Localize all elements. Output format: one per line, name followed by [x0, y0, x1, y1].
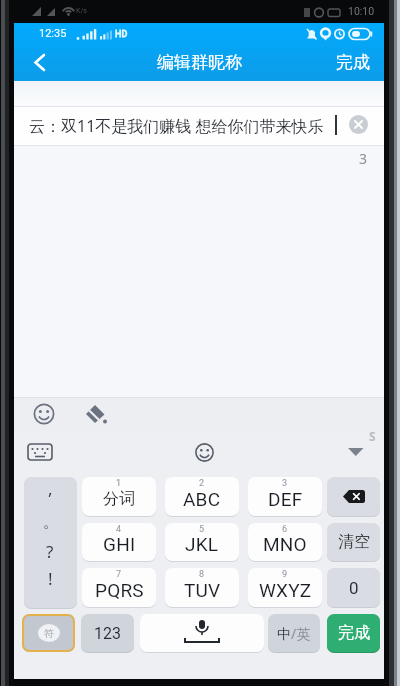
button[interactable] — [14, 107, 384, 145]
staticText: 9 — [282, 569, 288, 580]
staticText: 云：双11不是我们赚钱 想给你们带来快乐 — [29, 115, 324, 137]
staticText: 完成 — [336, 52, 370, 73]
staticText: 0 — [349, 578, 359, 598]
staticText: 编辑群昵称 — [157, 52, 242, 73]
staticText: 1 — [116, 478, 122, 489]
staticText: 中/英 — [277, 624, 311, 643]
staticText: 8 — [199, 569, 205, 580]
button[interactable] — [140, 614, 264, 652]
staticText: JKL — [185, 533, 219, 555]
staticText: HD — [115, 29, 128, 40]
staticText: MNO — [263, 533, 307, 555]
button[interactable] — [345, 444, 367, 460]
button[interactable]: 6 — [248, 523, 322, 561]
staticText: ? — [46, 540, 54, 563]
staticText: 分词 — [103, 489, 135, 509]
staticText: TUV — [184, 579, 221, 601]
staticText: 6 — [282, 524, 288, 535]
staticText: WXYZ — [259, 579, 312, 601]
button[interactable]: 0 — [327, 568, 380, 607]
button[interactable]: 9 — [248, 568, 322, 607]
button[interactable]: 7 — [82, 568, 156, 607]
staticText: 7 — [116, 569, 122, 580]
button[interactable] — [349, 115, 368, 134]
staticText: 。 — [43, 513, 58, 532]
staticText: 5 — [199, 524, 205, 535]
button[interactable] — [194, 442, 215, 463]
button[interactable]: 123 — [81, 614, 134, 652]
button[interactable] — [83, 402, 109, 426]
button[interactable]: 3 — [248, 477, 322, 516]
staticText: 10:10 — [348, 5, 375, 17]
button[interactable] — [27, 443, 54, 462]
button[interactable]: 中/英 — [268, 614, 320, 652]
button[interactable] — [327, 477, 380, 516]
button[interactable]: 8 — [165, 568, 239, 607]
button[interactable]: 符 — [22, 614, 75, 652]
button[interactable]: 2 — [165, 477, 239, 516]
staticText: 12:35 — [39, 27, 67, 40]
button[interactable] — [20, 44, 54, 81]
button[interactable]: 完成 — [330, 44, 376, 81]
button[interactable]: 清空 — [327, 523, 380, 561]
staticText: S — [369, 428, 376, 444]
staticText: 符 — [44, 627, 54, 640]
staticText: 4 — [116, 524, 122, 535]
staticText: ABC — [183, 488, 221, 510]
button[interactable]: 4 — [82, 523, 156, 561]
staticText: 123 — [94, 624, 121, 643]
button[interactable]: 完成 — [327, 614, 380, 652]
staticText: K/s — [76, 7, 87, 15]
staticText: 完成 — [338, 623, 370, 643]
button[interactable]: 5 — [165, 523, 239, 561]
staticText: ! — [48, 567, 53, 590]
button[interactable]: 1 — [82, 477, 156, 516]
staticText: 清空 — [338, 532, 370, 552]
staticText: 3 — [359, 149, 368, 168]
button[interactable] — [32, 402, 56, 426]
button[interactable] — [24, 477, 77, 608]
staticText: 2 — [199, 478, 205, 489]
staticText: , — [48, 477, 53, 500]
staticText: DEF — [268, 488, 303, 510]
staticText: GHI — [103, 533, 136, 555]
staticText: 3 — [282, 478, 288, 489]
staticText: PQRS — [95, 579, 144, 601]
